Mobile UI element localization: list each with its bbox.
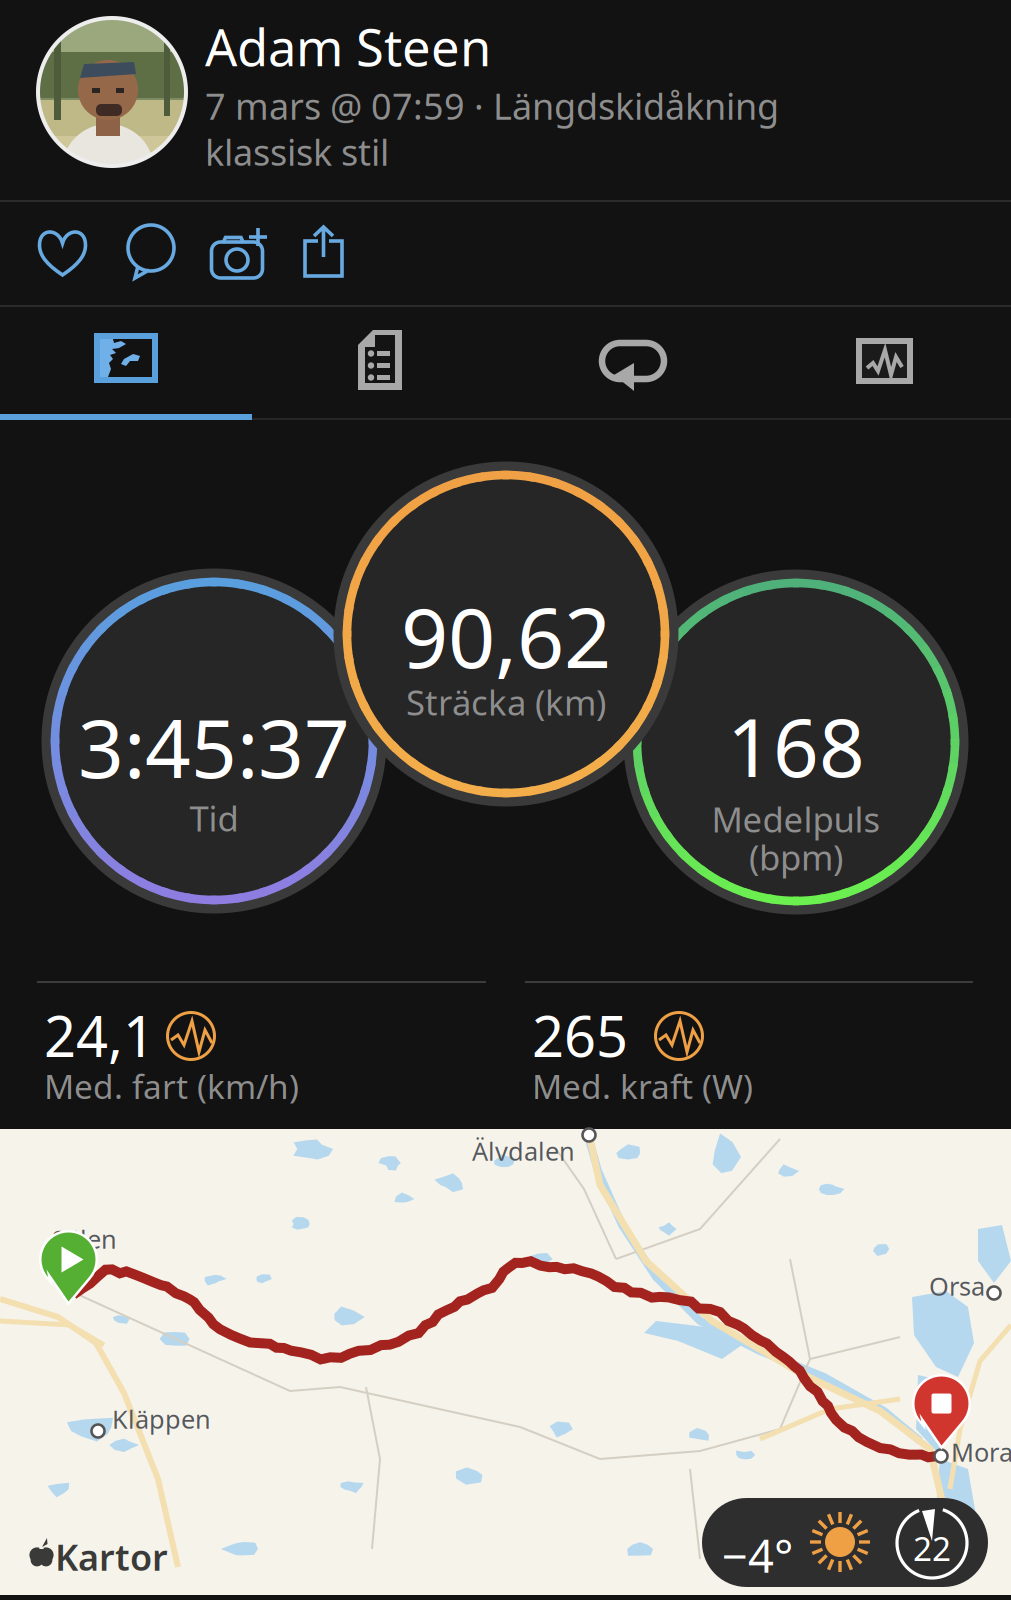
staticText: Med. kraft (W) bbox=[532, 1064, 753, 1108]
staticText: Med. fart (km/h) bbox=[44, 1064, 299, 1108]
staticText: Medelpuls bbox=[711, 796, 880, 842]
staticText: 265 bbox=[532, 998, 628, 1072]
button[interactable]: Comment bbox=[104, 212, 198, 292]
staticText: Adam Steen bbox=[205, 13, 491, 80]
button[interactable]: Charts bbox=[758, 307, 1011, 417]
staticText: 7 mars @ 07:59 · Längdskidåkning bbox=[205, 82, 779, 130]
staticText: 90,62 bbox=[401, 581, 611, 691]
staticText: Sträcka (km) bbox=[406, 679, 606, 725]
staticText: Kläppen bbox=[112, 1402, 211, 1436]
button[interactable]: Laps bbox=[506, 307, 759, 417]
staticText: 24,1 bbox=[44, 998, 155, 1072]
staticText: Mora bbox=[951, 1435, 1011, 1469]
staticText: −4° bbox=[722, 1525, 793, 1585]
button[interactable]: Add photo bbox=[191, 212, 285, 292]
button[interactable]: Share bbox=[277, 212, 371, 292]
staticText: Kartor bbox=[55, 1533, 168, 1581]
staticText: (bpm) bbox=[749, 834, 843, 880]
staticText: 22 bbox=[913, 1526, 951, 1570]
staticText: Älvdalen bbox=[472, 1134, 575, 1168]
staticText: klassisk stil bbox=[205, 128, 389, 176]
button[interactable]: Map bbox=[0, 307, 253, 417]
staticText: 168 bbox=[727, 693, 865, 799]
staticText: Sälen bbox=[52, 1222, 117, 1256]
staticText: 3:45:37 bbox=[78, 694, 350, 800]
button[interactable]: Details bbox=[253, 307, 506, 417]
staticText: Tid bbox=[189, 795, 238, 841]
button[interactable]: Like bbox=[16, 212, 110, 292]
staticText: Orsa bbox=[929, 1269, 985, 1303]
